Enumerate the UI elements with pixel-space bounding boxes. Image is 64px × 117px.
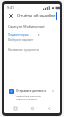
button[interactable]: Главный экран [26,104,38,113]
button[interactable]: Закрыть подсказку [51,89,55,93]
button[interactable]: Отправьте данные о проблеме [7,87,57,102]
staticText: Подробное описание поможет нам быстрее [16,94,50,97]
button[interactable]: Обзор [9,104,21,113]
button[interactable]: Назад [43,104,55,113]
staticText: ▾ [38,33,40,36]
staticText: найти и устранить неполадку в системе [16,97,50,100]
staticText: Отправьте данные о проблеме [16,89,50,93]
staticText: Подкатегория [8,33,29,37]
staticText: Отчёты об ошибке [17,13,56,19]
staticText: Самсунг Мобильный [8,24,45,29]
button[interactable]: Подкатегория [8,33,56,42]
staticText: Выберите вариант [8,38,34,42]
button[interactable]: Закрыть [7,12,15,20]
staticText: Название сущности [8,48,39,52]
staticText: 9:41 [7,5,14,10]
